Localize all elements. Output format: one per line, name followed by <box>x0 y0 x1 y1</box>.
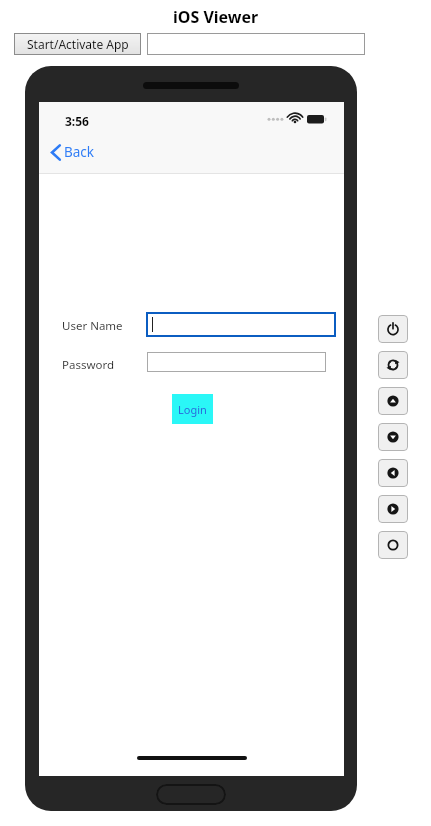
staticText: 3:56 <box>65 113 89 129</box>
button[interactable]: Up <box>378 387 408 415</box>
button[interactable]: Down <box>378 423 408 451</box>
button[interactable]: Power <box>378 315 408 343</box>
button[interactable] <box>147 352 326 372</box>
button[interactable]: Right <box>378 495 408 523</box>
button[interactable]: Home button <box>156 784 226 805</box>
button[interactable]: Login <box>172 394 213 424</box>
staticText: Start/Activate App <box>27 36 129 52</box>
staticText: Password <box>62 357 115 373</box>
button[interactable] <box>146 312 336 337</box>
staticText: Login <box>178 402 207 417</box>
button[interactable]: Refresh <box>378 351 408 379</box>
button[interactable]: Left <box>378 459 408 487</box>
staticText: Back <box>64 143 95 161</box>
button[interactable]: Home <box>378 531 408 559</box>
button[interactable]: Start/Activate App <box>14 33 141 55</box>
button[interactable]: Back <box>51 138 95 166</box>
button[interactable] <box>147 33 365 55</box>
staticText: iOS Viewer <box>173 6 259 28</box>
staticText: User Name <box>62 318 123 334</box>
